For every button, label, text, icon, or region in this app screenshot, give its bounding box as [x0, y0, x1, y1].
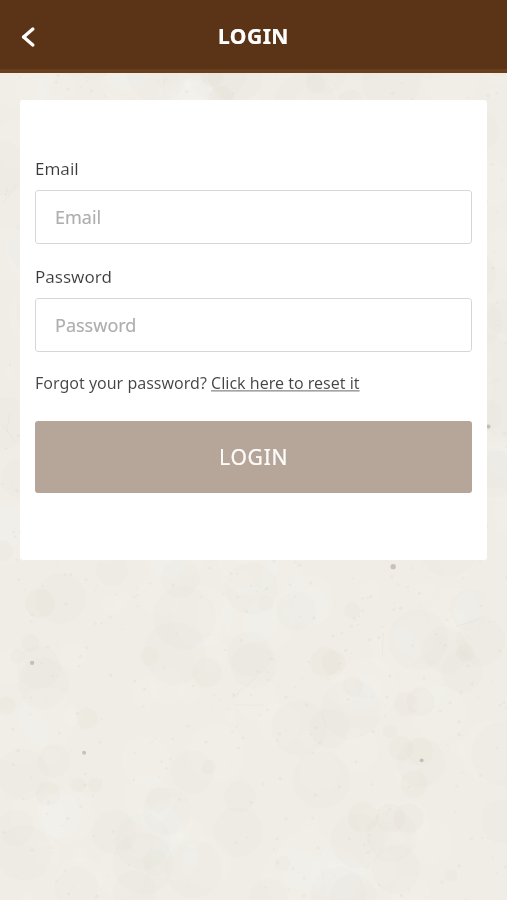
- staticText: Password: [35, 265, 112, 288]
- staticText: Forgot your password? Click here to rese…: [35, 372, 360, 394]
- button[interactable]: Email: [35, 190, 472, 244]
- staticText: Password: [55, 313, 137, 338]
- staticText: LOGIN: [219, 443, 289, 472]
- staticText: Email: [55, 205, 102, 230]
- button[interactable]: LOGIN: [35, 421, 472, 493]
- button[interactable]: Forgot your password? Click here to rese…: [35, 372, 360, 394]
- button[interactable]: Back: [4, 13, 52, 61]
- button[interactable]: Password: [35, 298, 472, 352]
- staticText: Email: [35, 157, 79, 180]
- staticText: LOGIN: [218, 22, 289, 51]
